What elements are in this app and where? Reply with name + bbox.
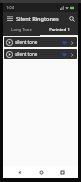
button[interactable]: silent tone <box>4 49 77 59</box>
button[interactable]: Favorite <box>60 38 68 46</box>
button[interactable]: Back <box>13 166 25 178</box>
button[interactable]: Favorite <box>60 50 68 58</box>
button[interactable]: More options <box>68 51 75 58</box>
staticText: silent tone <box>15 39 60 45</box>
staticText: Parinted 1 <box>49 27 70 33</box>
staticText: 1:04 <box>6 5 14 10</box>
button[interactable]: Long Tone <box>3 25 40 35</box>
button[interactable]: More options <box>68 39 75 46</box>
staticText: Silent Ringtones <box>16 15 65 22</box>
button[interactable]: Recent apps <box>56 166 68 178</box>
button[interactable]: silent tone <box>4 37 77 47</box>
button[interactable]: Parinted 1 <box>40 25 78 35</box>
button[interactable]: Open navigation menu <box>3 12 16 25</box>
staticText: Long Tone <box>11 27 32 33</box>
button[interactable]: Search <box>65 12 78 25</box>
staticText: silent tone <box>15 51 60 57</box>
button[interactable]: Home <box>35 166 47 178</box>
